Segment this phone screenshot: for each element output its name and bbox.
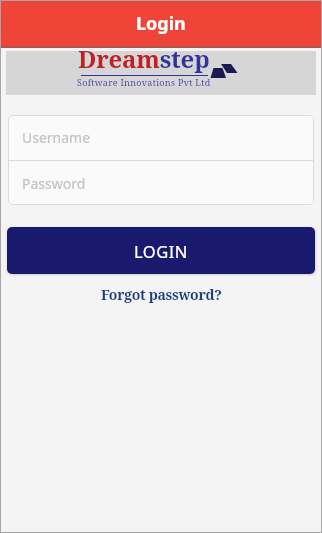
button[interactable]: Password (8, 161, 314, 205)
staticText: Dreamstep (78, 42, 210, 75)
staticText: Forgot password? (101, 285, 222, 304)
staticText: Login (136, 11, 186, 36)
staticText: Password (22, 174, 86, 193)
staticText: Username (22, 128, 91, 147)
button[interactable]: Forgot password? (101, 285, 222, 304)
button[interactable]: Username (8, 115, 314, 160)
staticText: Software Innovations Pvt Ltd (77, 76, 211, 86)
staticText: LOGIN (134, 240, 188, 262)
button[interactable]: Login (1, 1, 321, 46)
button[interactable]: LOGIN (7, 227, 315, 274)
